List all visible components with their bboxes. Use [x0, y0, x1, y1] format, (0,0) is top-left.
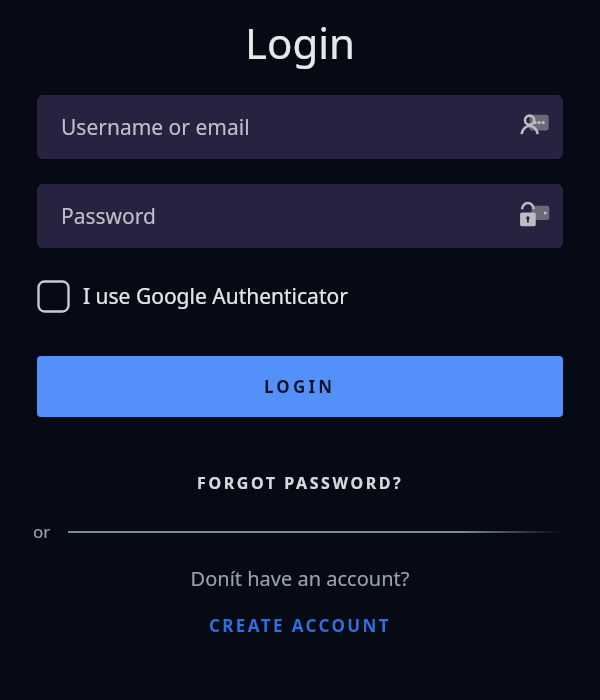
staticText: Login: [0, 14, 600, 71]
staticText: Username or email: [61, 113, 511, 142]
button[interactable]: LOGIN: [37, 356, 563, 417]
staticText: CREATE ACCOUNT: [209, 614, 392, 637]
staticText: FORGOT PASSWORD?: [197, 472, 404, 494]
staticText: or: [33, 520, 51, 543]
button[interactable]: Username or email: [37, 95, 563, 159]
button[interactable]: FORGOT PASSWORD?: [0, 472, 600, 494]
button[interactable]: I use Google Authenticator: [37, 280, 348, 313]
staticText: LOGIN: [264, 375, 336, 398]
button[interactable]: Choose saved account: [511, 105, 555, 149]
button[interactable]: Show saved passwords: [511, 194, 555, 238]
staticText: Password: [61, 202, 511, 231]
button[interactable]: Password: [37, 184, 563, 248]
staticText: Donít have an account?: [0, 565, 600, 592]
button[interactable]: CREATE ACCOUNT: [0, 614, 600, 637]
staticText: I use Google Authenticator: [83, 282, 348, 311]
